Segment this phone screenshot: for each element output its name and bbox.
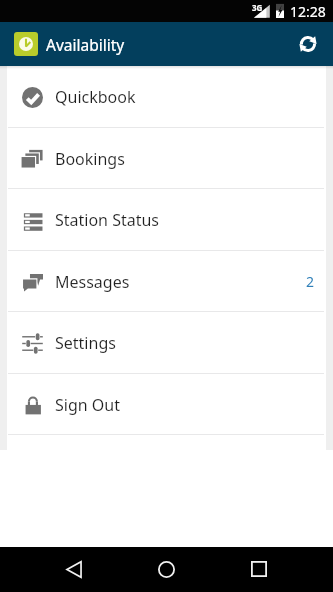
button[interactable]: Quickbook	[7, 66, 326, 128]
button[interactable]: Recents	[237, 547, 281, 591]
staticText: Bookings	[55, 148, 125, 170]
staticText: Messages	[55, 271, 130, 293]
staticText: 3G	[252, 2, 263, 13]
button[interactable]: Settings	[7, 312, 326, 374]
button[interactable]: Messages	[7, 251, 326, 312]
staticText: Quickbook	[55, 86, 136, 108]
button[interactable]: Sign Out	[7, 374, 326, 435]
button[interactable]: Back	[52, 547, 96, 591]
staticText: 12:28	[290, 2, 326, 21]
staticText: Station Status	[55, 209, 160, 231]
staticText: Availability	[46, 34, 125, 55]
button[interactable]: Station Status	[7, 189, 326, 251]
button[interactable]: Bookings	[7, 128, 326, 189]
staticText: Settings	[55, 332, 116, 354]
button[interactable]: Refresh	[292, 28, 324, 60]
staticText: Sign Out	[55, 394, 120, 416]
staticText: 2	[306, 272, 315, 291]
button[interactable]: Home	[144, 547, 188, 591]
